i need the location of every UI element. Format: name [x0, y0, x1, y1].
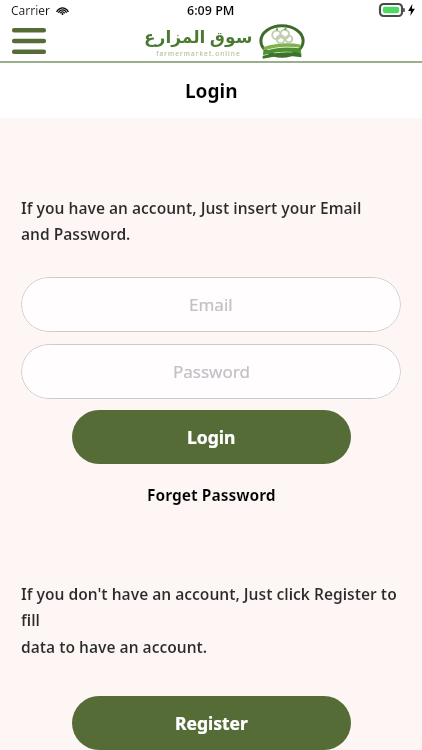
- staticText: If you have an account, Just insert your…: [21, 197, 404, 245]
- button[interactable]: Login: [72, 410, 351, 464]
- button[interactable]: Register: [72, 696, 351, 750]
- staticText: Login: [185, 78, 238, 104]
- staticText: Login: [187, 425, 236, 449]
- staticText: سوق المزارع: [144, 25, 253, 48]
- staticText: Email: [189, 293, 233, 316]
- staticText: 6:09 PM: [187, 2, 235, 19]
- staticText: Carrier: [11, 2, 51, 18]
- staticText: If you don't have an account, Just click…: [21, 583, 408, 658]
- button[interactable]: Menu: [8, 24, 50, 58]
- button[interactable]: Password: [21, 344, 401, 399]
- button[interactable]: Forget Password: [137, 480, 286, 509]
- staticText: Password: [173, 360, 250, 383]
- staticText: Register: [175, 711, 248, 735]
- staticText: farmermarket.online: [156, 49, 241, 58]
- button[interactable]: Email: [21, 277, 401, 332]
